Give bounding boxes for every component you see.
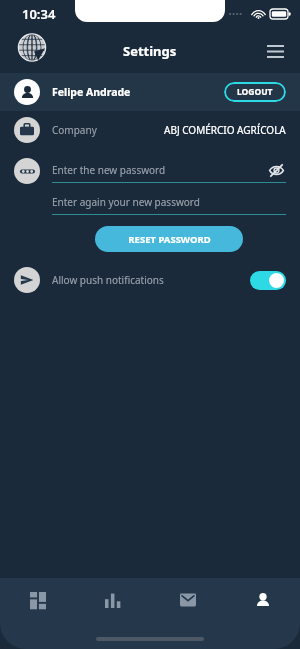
button[interactable]: Enter the new password [52,158,286,182]
staticText: Felipe Andrade [52,85,131,99]
staticText: Enter again your new password [52,195,200,209]
button[interactable]: Profile [225,578,300,622]
button[interactable]: Dashboard [0,578,75,622]
button[interactable]: Enter again your new password [52,190,286,214]
button[interactable]: Felipe Andrade [0,73,300,111]
button[interactable]: Messages [150,578,225,622]
staticText: Settings [123,42,177,60]
staticText: Company [52,123,97,137]
button[interactable]: Toggle password visibility [266,160,286,180]
staticText: Enter the new password [52,163,166,177]
button[interactable]: RESET PASSWORD [95,226,243,252]
staticText: LOGOUT [237,86,273,98]
button[interactable]: LOGOUT [224,82,286,102]
button[interactable]: Laferuns logo [10,29,54,73]
button[interactable]: Allow push notifications toggle [250,271,286,290]
button[interactable]: Statistics [75,578,150,622]
button[interactable]: Allow push notifications [0,264,300,296]
staticText: Allow push notifications [52,273,164,287]
staticText: 10:34 [22,5,56,23]
staticText: ABJ COMÉRCIO AGRÍCOLA [164,123,286,137]
button[interactable]: Company [0,111,300,148]
staticText: RESET PASSWORD [128,233,211,246]
button[interactable]: Menu [258,34,292,68]
